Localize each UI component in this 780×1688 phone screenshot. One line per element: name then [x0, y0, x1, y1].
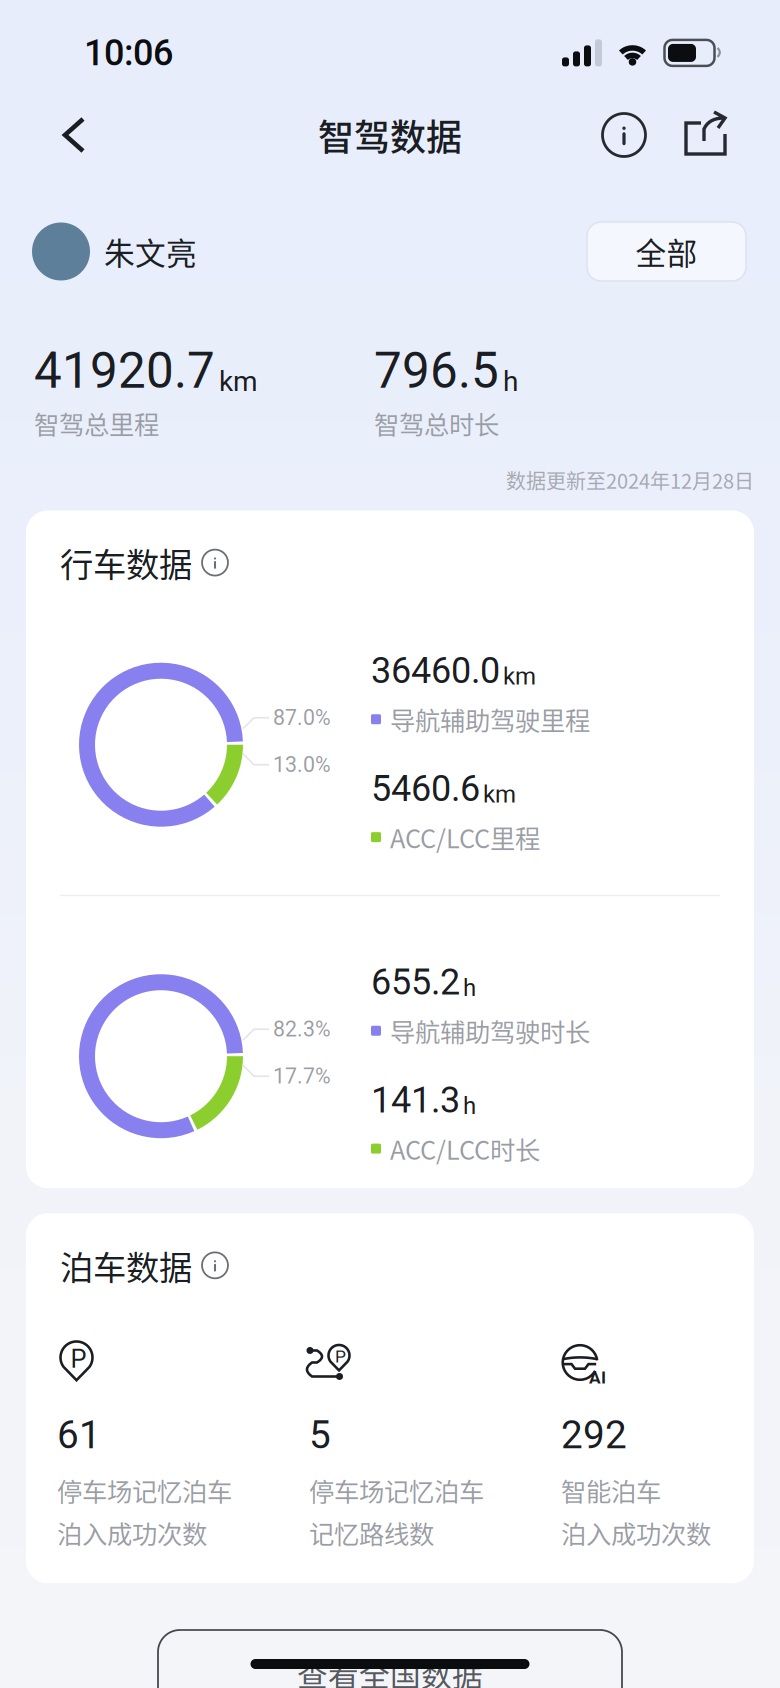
staticText: 655.2	[371, 961, 460, 1003]
staticText: h	[463, 974, 476, 1002]
staticText: 智驾总里程	[34, 405, 159, 441]
button[interactable]: 查看全国数据	[158, 1630, 622, 1688]
staticText: 17.7%	[273, 1064, 331, 1089]
staticText: 61	[57, 1412, 101, 1458]
staticText: 数据更新至2024年12月28日	[506, 465, 754, 494]
staticText: 13.0%	[273, 752, 331, 777]
staticText: 行车数据	[60, 538, 192, 587]
button[interactable]: Share	[671, 100, 741, 170]
staticText: 292	[561, 1412, 627, 1458]
staticText: 5460.6	[371, 768, 480, 810]
staticText: 全部	[635, 229, 697, 274]
staticText: 记忆路线数	[309, 1514, 434, 1551]
staticText: 智驾总时长	[374, 405, 499, 441]
staticText: ACC/LCC时长	[390, 1130, 540, 1167]
staticText: P	[71, 1344, 87, 1374]
staticText: 10:06	[84, 32, 173, 74]
staticText: 41920.7	[34, 342, 215, 400]
staticText: ACC/LCC里程	[390, 819, 540, 855]
staticText: 停车场记忆泊车	[57, 1472, 232, 1508]
staticText: 停车场记忆泊车	[309, 1472, 484, 1508]
staticText: 智能泊车	[561, 1472, 661, 1508]
staticText: 5	[309, 1412, 331, 1458]
staticText: 导航辅助驾驶里程	[390, 701, 590, 738]
staticText: 智驾数据	[318, 109, 462, 161]
staticText: 朱文亮	[104, 229, 197, 274]
staticText: AI	[589, 1367, 606, 1388]
staticText: 泊车数据	[60, 1241, 192, 1289]
staticText: km	[483, 780, 516, 808]
staticText: 141.3	[371, 1079, 460, 1121]
staticText: 82.3%	[273, 1017, 331, 1042]
button[interactable]: Back	[38, 100, 110, 170]
staticText: 查看全国数据	[297, 1651, 483, 1688]
staticText: 36460.0	[371, 650, 500, 692]
staticText: h	[503, 365, 518, 398]
staticText: 87.0%	[273, 705, 331, 730]
staticText: 泊入成功次数	[561, 1514, 711, 1551]
staticText: 导航辅助驾驶时长	[390, 1012, 590, 1049]
staticText: P	[335, 1346, 346, 1367]
staticText: 796.5	[374, 342, 499, 400]
staticText: km	[219, 365, 258, 398]
staticText: 泊入成功次数	[57, 1514, 207, 1551]
staticText: h	[463, 1092, 476, 1120]
button[interactable]: Info	[589, 100, 659, 170]
staticText: km	[503, 662, 536, 690]
button[interactable]: 全部	[587, 222, 746, 281]
